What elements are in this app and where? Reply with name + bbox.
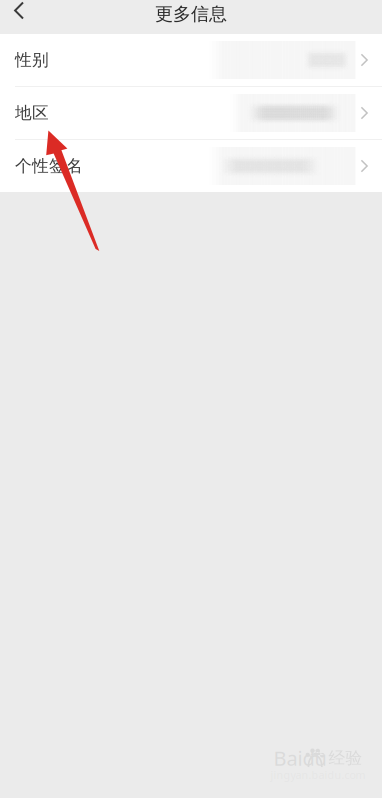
button[interactable]: 个性签名 xyxy=(0,140,382,192)
button[interactable]: Back xyxy=(0,0,38,34)
staticText: 更多信息 xyxy=(155,3,227,25)
staticText: 性别 xyxy=(15,49,49,70)
staticText: 经验 xyxy=(328,747,362,768)
staticText: Baidu xyxy=(273,744,326,772)
staticText: 地区 xyxy=(15,102,49,123)
button[interactable]: 性别 xyxy=(0,34,382,86)
staticText: 个性签名 xyxy=(15,155,83,176)
button[interactable]: 地区 xyxy=(0,87,382,139)
